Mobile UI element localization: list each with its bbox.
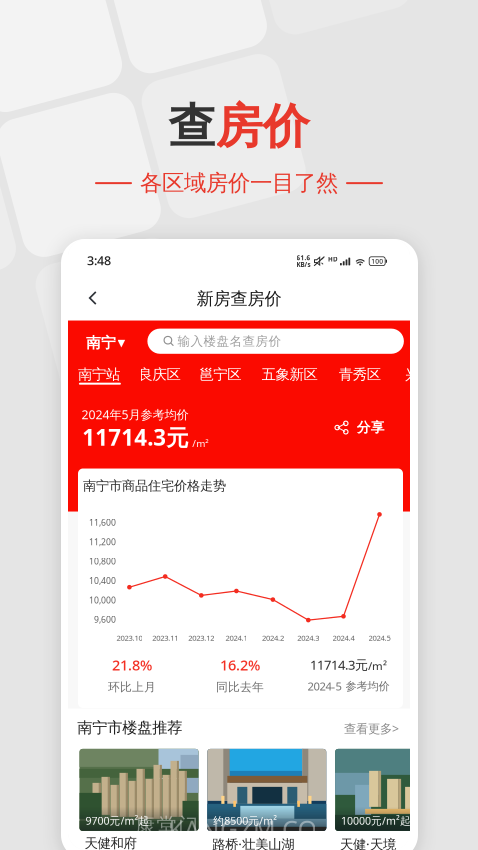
button[interactable]: 兴 <box>405 365 419 383</box>
button[interactable]: Back <box>78 280 108 316</box>
staticText: 良庆区 <box>138 365 180 383</box>
staticText: 10,400 <box>89 575 116 586</box>
staticText: 南宁市楼盘推荐 <box>77 718 182 737</box>
staticText: 10000元/m²起 <box>341 813 411 828</box>
staticText: 查 <box>168 97 215 156</box>
staticText: 2023.12 <box>188 632 214 643</box>
button[interactable]: 南宁 <box>86 333 125 352</box>
staticText: 100 <box>371 257 383 266</box>
button[interactable]: 邕宁区 <box>199 365 241 383</box>
button[interactable]: 10000元/m²起 <box>335 749 454 850</box>
staticText: 10,800 <box>89 555 116 567</box>
staticText: 2024.1 <box>225 632 247 643</box>
staticText: 2024.3 <box>297 632 319 643</box>
staticText: 新房查房价 <box>196 288 281 310</box>
staticText: /m² <box>368 658 387 673</box>
staticText: 2024.4 <box>332 632 354 643</box>
staticText: 21.8% <box>112 655 152 675</box>
staticText: 南宁市商品住宅价格走势 <box>83 477 226 494</box>
staticText: 2023.10 <box>116 632 142 643</box>
staticText: KANGZM.CO <box>168 812 317 846</box>
staticText: 天健·天境 <box>340 835 396 850</box>
button[interactable]: 五象新区 <box>262 365 318 383</box>
staticText: 11714.3元 <box>310 656 368 673</box>
staticText: 11,600 <box>89 517 116 528</box>
staticText: HD <box>328 255 338 263</box>
staticText: 9700元/m²起 <box>85 813 149 828</box>
staticText: 各区域房价一目了然 <box>140 169 338 197</box>
button[interactable]: 查看更多> <box>344 720 399 737</box>
staticText: 11,200 <box>89 536 116 548</box>
staticText: 2023.11 <box>152 632 178 643</box>
staticText: 16.2% <box>220 655 260 675</box>
staticText: KB/s <box>296 260 310 269</box>
staticText: 南宁 <box>86 333 116 352</box>
button[interactable]: 良庆区 <box>138 365 180 383</box>
staticText: 南宁站 <box>78 365 120 383</box>
staticText: 房价 <box>215 97 309 156</box>
staticText: 参考均价 <box>345 679 389 693</box>
staticText: 3:48 <box>87 252 111 269</box>
staticText: ▼ <box>117 337 125 349</box>
staticText: 康堂门 <box>135 813 198 838</box>
staticText: 青秀区 <box>339 365 381 383</box>
staticText: 61.6 <box>296 253 310 262</box>
staticText: 9,600 <box>94 614 116 625</box>
staticText: 11714.3元 <box>82 422 188 452</box>
staticText: 兴 <box>405 365 419 383</box>
staticText: 分享 <box>357 419 385 436</box>
button[interactable]: 青秀区 <box>339 365 381 383</box>
staticText: 10,000 <box>89 594 116 606</box>
button[interactable]: 约8500元/m² <box>207 749 326 850</box>
staticText: 路桥·壮美山湖 <box>212 835 294 850</box>
button[interactable]: 9700元/m²起 <box>79 749 198 850</box>
staticText: 查看更多> <box>344 720 399 737</box>
staticText: /m² <box>192 436 208 450</box>
staticText: 约8500元/m² <box>213 813 277 828</box>
staticText: 天健和府 <box>84 835 136 850</box>
button[interactable]: 输入楼盘名查房价 <box>147 329 404 354</box>
staticText: 2024-5 <box>307 678 341 694</box>
staticText: 五象新区 <box>262 365 318 383</box>
staticText: 输入楼盘名查房价 <box>177 333 281 349</box>
staticText: 2024.5 <box>368 632 390 643</box>
staticText: 邕宁区 <box>199 365 241 383</box>
staticText: 环比上月 <box>108 680 156 695</box>
button[interactable]: 南宁站 <box>78 365 120 383</box>
staticText: 2024.2 <box>262 632 284 643</box>
staticText: 2024年5月参考均价 <box>82 406 189 423</box>
staticText: 同比去年 <box>216 680 264 695</box>
button[interactable]: 分享 <box>334 419 385 436</box>
